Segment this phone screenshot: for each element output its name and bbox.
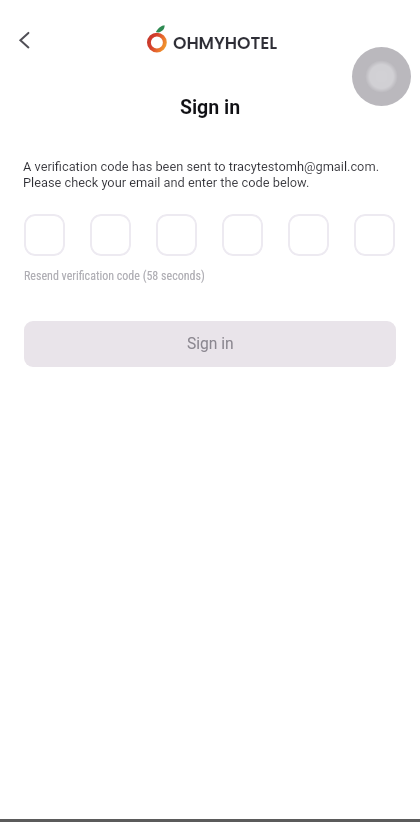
staticText: Sign in — [187, 335, 234, 353]
button[interactable]: Resend verification code (58 seconds) — [24, 269, 205, 283]
button[interactable]: Code digit 5 — [288, 214, 329, 256]
button[interactable]: Code digit 1 — [24, 214, 65, 256]
button[interactable]: Back — [7, 22, 43, 58]
staticText: Sign in — [0, 96, 420, 119]
button[interactable]: Code digit 3 — [156, 214, 197, 256]
button[interactable]: Code digit 4 — [222, 214, 263, 256]
staticText: A verification code has been sent to tra… — [23, 159, 380, 191]
staticText: OHMYHOTEL — [173, 31, 278, 55]
button[interactable]: Code digit 6 — [354, 214, 395, 256]
button[interactable]: Code digit 2 — [90, 214, 131, 256]
button[interactable]: Sign in — [24, 321, 396, 367]
